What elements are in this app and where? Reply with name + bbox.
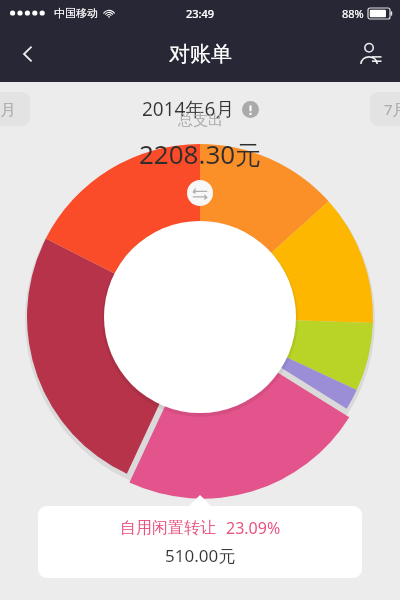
staticText: 2014年6月	[142, 96, 235, 122]
staticText: 自用闲置转让	[120, 518, 216, 538]
staticText: 7月	[384, 99, 400, 119]
button[interactable]: 2014年6月	[142, 96, 259, 122]
button[interactable]: 自用闲置转让	[38, 506, 362, 578]
staticText: 23:49	[186, 6, 215, 21]
staticText: 2208.30元	[139, 136, 262, 172]
button[interactable]: Switch chart	[187, 180, 213, 206]
button[interactable]: 5月	[0, 92, 30, 126]
staticText: 总支出	[178, 111, 223, 130]
button[interactable]: Back	[4, 30, 52, 78]
staticText: 510.00元	[165, 544, 236, 567]
staticText: 5月	[0, 99, 16, 119]
button[interactable]: 7月	[370, 92, 400, 126]
button[interactable]: Account	[346, 30, 394, 78]
staticText: 23.09%	[226, 517, 281, 539]
staticText: 88%	[342, 6, 364, 21]
staticText: 对账单	[169, 41, 232, 67]
staticText: 中国移动	[54, 6, 98, 20]
